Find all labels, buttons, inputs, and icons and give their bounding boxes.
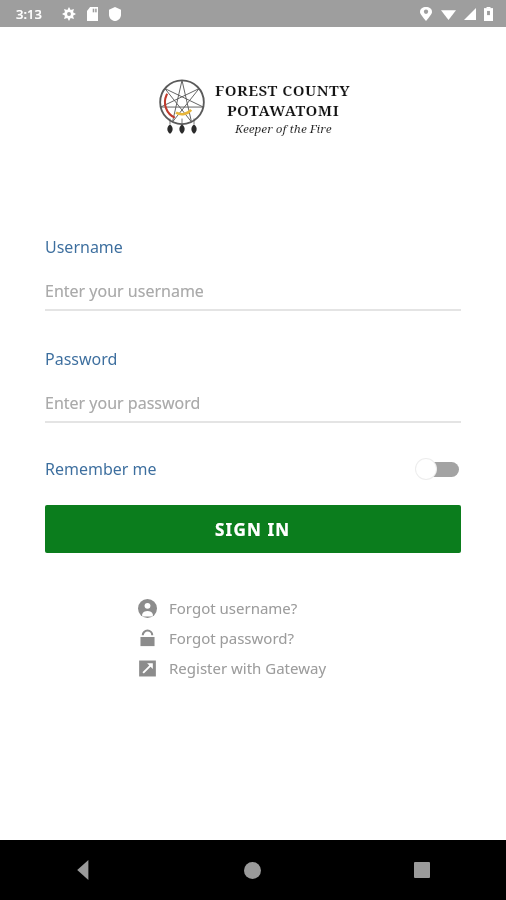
button[interactable]: Back <box>0 840 168 900</box>
staticText: Register with Gateway <box>169 658 327 678</box>
button[interactable]: Recent apps <box>337 840 506 900</box>
staticText: Username <box>45 236 123 258</box>
staticText: Password <box>45 348 118 370</box>
staticText: POTAWATOMI <box>227 100 340 120</box>
button[interactable]: SIGN IN <box>45 505 461 553</box>
button[interactable]: Register with Gateway <box>0 653 506 683</box>
staticText: Forgot password? <box>169 628 295 648</box>
button[interactable]: Home <box>168 840 337 900</box>
staticText: SIGN IN <box>215 518 291 541</box>
other: Remember me toggle <box>415 457 461 481</box>
staticText: FOREST COUNTY <box>215 80 351 100</box>
staticText: Enter your password <box>45 392 201 414</box>
staticText: Forgot username? <box>169 598 298 618</box>
staticText: 3:13 <box>16 5 42 23</box>
button[interactable]: Remember me <box>0 451 506 487</box>
button[interactable]: Forgot username? <box>0 593 506 623</box>
staticText: Remember me <box>45 458 157 480</box>
button[interactable]: Forgot password? <box>0 623 506 653</box>
staticText: Keeper of the Fire <box>235 121 332 137</box>
staticText: Enter your username <box>45 280 204 302</box>
